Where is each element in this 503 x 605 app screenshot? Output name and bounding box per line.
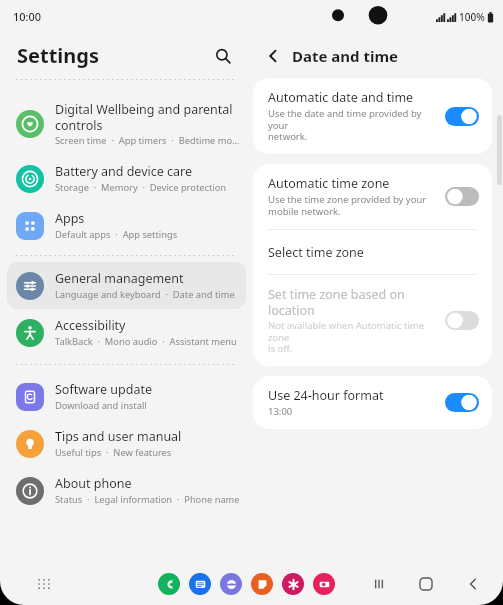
staticText: Screen time · App timers · Bedtime mode [55, 134, 240, 147]
button[interactable]: Back [258, 41, 288, 71]
staticText: Storage · Memory · Device protection [55, 181, 227, 194]
staticText: General management [55, 270, 184, 287]
staticText: Not available when Automatic time zone i… [268, 319, 437, 355]
staticText: Default apps · App settings [55, 228, 178, 241]
staticText: 13:00 [268, 405, 293, 418]
button[interactable]: Phone [158, 573, 180, 595]
button[interactable]: Off [445, 187, 479, 206]
staticText: Apps [55, 210, 85, 227]
button[interactable]: Camera [313, 573, 335, 595]
button[interactable]: Home [413, 571, 439, 597]
staticText: Download and install [55, 399, 147, 412]
staticText: About phone [55, 475, 132, 492]
button[interactable]: Internet [220, 573, 242, 595]
button[interactable]: Set time zone based on location [253, 275, 492, 366]
staticText: Accessibility [55, 317, 126, 334]
button[interactable]: On [445, 393, 479, 412]
button[interactable]: General management [7, 262, 246, 309]
button[interactable]: Messages [189, 573, 211, 595]
staticText: Digital Wellbeing and parental controls [55, 101, 233, 133]
staticText: Status · Legal information · Phone name [55, 493, 240, 506]
staticText: Battery and device care [55, 163, 193, 180]
staticText: Select time zone [268, 244, 364, 261]
staticText: Useful tips · New features [55, 446, 172, 459]
button[interactable]: Accessibility [7, 309, 246, 356]
button[interactable]: Automatic date and time [253, 78, 492, 154]
button[interactable]: About phone [7, 467, 246, 514]
button[interactable]: Notes [251, 573, 273, 595]
button[interactable]: Tips and user manual [7, 420, 246, 467]
button[interactable]: Apps [7, 202, 246, 249]
button[interactable]: Select time zone [253, 230, 492, 274]
staticText: Use 24-hour format [268, 387, 384, 404]
staticText: Automatic date and time [268, 89, 414, 106]
button[interactable]: Search [207, 40, 239, 72]
button[interactable]: Recents [366, 571, 392, 597]
button[interactable]: Automatic time zone [253, 164, 492, 229]
staticText: Language and keyboard · Date and time [55, 288, 235, 301]
staticText: 10:00 [13, 9, 42, 24]
button[interactable]: Back [460, 571, 486, 597]
button[interactable]: Off [445, 311, 479, 330]
staticText: Use the time zone provided by your mobil… [268, 193, 427, 218]
button[interactable]: Use 24-hour format [253, 376, 492, 429]
staticText: Date and time [292, 46, 399, 66]
button[interactable]: Digital Wellbeing and parental controls [7, 93, 246, 155]
button[interactable]: On [445, 107, 479, 126]
button[interactable]: Software update [7, 373, 246, 420]
staticText: Settings [17, 42, 99, 69]
button[interactable]: All apps [30, 570, 58, 598]
staticText: Software update [55, 381, 152, 398]
staticText: Set time zone based on location [268, 286, 405, 318]
staticText: TalkBack · Mono audio · Assistant menu [55, 335, 237, 348]
staticText: 100% [459, 10, 485, 24]
staticText: Use the date and time provided by your n… [268, 107, 437, 143]
button[interactable]: Battery and device care [7, 155, 246, 202]
staticText: Tips and user manual [55, 428, 182, 445]
staticText: Automatic time zone [268, 175, 390, 192]
button[interactable]: Gallery [282, 573, 304, 595]
